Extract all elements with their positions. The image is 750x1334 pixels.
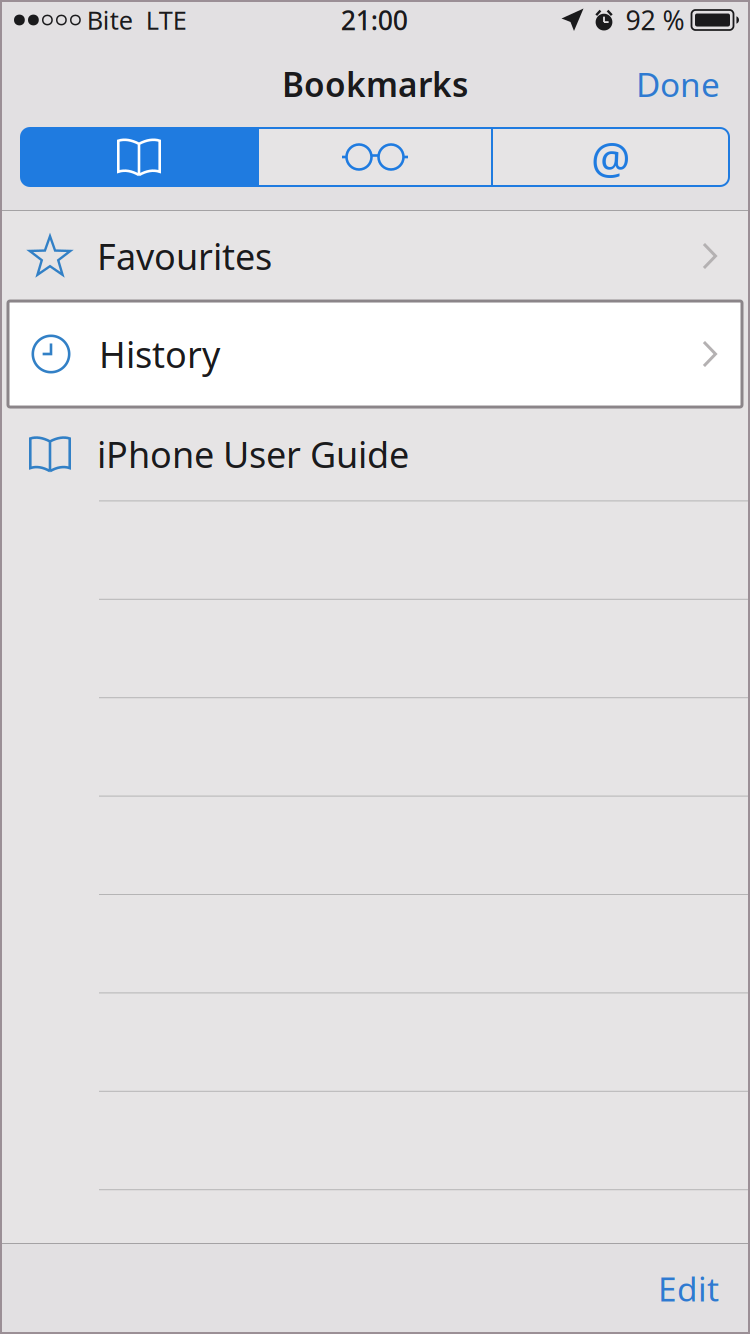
staticText: 21:00 xyxy=(341,2,408,38)
button[interactable]: History xyxy=(0,301,750,407)
staticText: iPhone User Guide xyxy=(97,430,409,478)
button[interactable]: Empty bookmark row xyxy=(0,895,750,993)
staticText: Edit xyxy=(658,1266,719,1311)
button[interactable]: Empty bookmark row xyxy=(0,501,750,600)
button[interactable]: Empty bookmark row xyxy=(0,600,750,698)
staticText: Done xyxy=(636,62,720,106)
button[interactable]: Reading List xyxy=(257,128,493,186)
staticText: @ xyxy=(591,128,631,186)
button[interactable]: Bookmarks xyxy=(21,128,257,186)
staticText: Bookmarks xyxy=(282,62,468,106)
button[interactable]: Edit xyxy=(627,1243,750,1334)
button[interactable]: Empty bookmark row xyxy=(0,993,750,1092)
button[interactable]: Empty bookmark row xyxy=(0,1092,750,1190)
staticText: LTE xyxy=(146,3,187,37)
button[interactable]: Empty bookmark row xyxy=(0,698,750,797)
button[interactable]: Shared Links xyxy=(493,128,729,186)
button[interactable]: iPhone User Guide xyxy=(0,407,750,501)
staticText: Bite xyxy=(87,3,133,37)
staticText: History xyxy=(99,330,220,378)
button[interactable]: Favourites xyxy=(0,211,750,301)
button[interactable]: Empty bookmark row xyxy=(0,797,750,895)
button[interactable]: Empty bookmark row xyxy=(0,403,750,501)
staticText: 92 % xyxy=(625,2,684,38)
button[interactable]: Done xyxy=(606,60,750,108)
staticText: Favourites xyxy=(97,232,272,280)
